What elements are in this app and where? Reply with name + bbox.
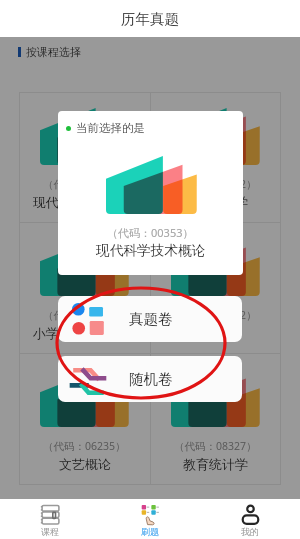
staticText: （代码：08327） — [174, 439, 257, 453]
button[interactable]: 我的 — [200, 499, 300, 539]
button[interactable]: （代码：00152） — [150, 92, 281, 223]
staticText: 现代科学技术概论 — [96, 242, 206, 259]
staticText: 随机卷 — [129, 370, 173, 388]
button[interactable]: 课程 — [0, 499, 100, 539]
button[interactable]: 随机卷 — [58, 356, 242, 402]
staticText: 教育统计学 — [183, 456, 248, 472]
staticText: （代码：00353） — [107, 225, 194, 240]
button[interactable]: 真题卷 — [58, 296, 242, 342]
staticText: 刷题 — [141, 526, 159, 537]
staticText: （代码：00407） — [43, 308, 126, 322]
button[interactable]: （代码：00407） — [19, 223, 150, 354]
staticText: 按课程选择 — [26, 45, 81, 59]
staticText: （代码：00353） — [43, 177, 126, 191]
staticText: 课程 — [41, 526, 59, 537]
staticText: （代码：06235） — [43, 439, 126, 453]
button[interactable]: （代码：00442） — [150, 223, 281, 354]
staticText: （代码：00152） — [174, 177, 257, 191]
staticText: 小学教育科学研究 — [33, 325, 137, 341]
staticText: 真题卷 — [129, 310, 173, 328]
staticText: 文艺概论 — [59, 456, 111, 472]
staticText: 教育学 — [196, 325, 235, 341]
button[interactable]: （代码：08327） — [150, 354, 281, 485]
staticText: （代码：00442） — [174, 308, 257, 322]
button[interactable]: 刷题 — [100, 499, 200, 539]
staticText: 历年真题 — [121, 10, 179, 28]
staticText: 当前选择的是 — [76, 121, 145, 135]
staticText: 现代科学技术概论 — [33, 194, 137, 210]
button[interactable]: （代码：06235） — [19, 354, 150, 485]
button[interactable]: （代码：00353） — [19, 92, 150, 223]
staticText: 经济管理学 — [183, 194, 248, 210]
staticText: 我的 — [241, 526, 259, 537]
